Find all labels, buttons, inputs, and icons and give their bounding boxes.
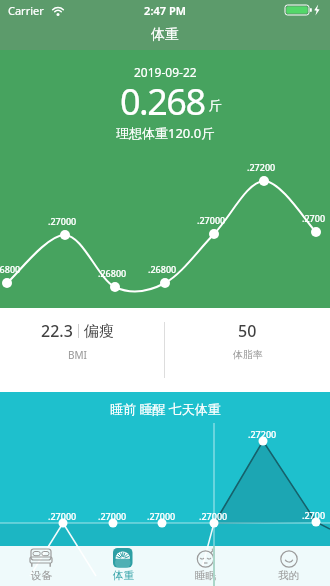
- staticText: BMI: [68, 348, 87, 362]
- staticText: 2:47 PM: [0, 3, 330, 18]
- staticText: .27000: [98, 510, 127, 522]
- staticText: .27000: [147, 510, 176, 522]
- staticText: 理想体重120.0斤: [116, 124, 215, 142]
- staticText: 体脂率: [233, 348, 263, 361]
- staticText: .27000: [48, 215, 77, 227]
- staticText: .27200: [248, 428, 277, 440]
- staticText: .2700: [302, 212, 326, 224]
- button[interactable]: 设备: [0, 546, 82, 586]
- button[interactable]: 50: [165, 308, 330, 392]
- staticText: .26800: [98, 267, 127, 279]
- staticText: .27200: [247, 161, 276, 173]
- staticText: 睡眠: [195, 569, 216, 582]
- staticText: .27000: [199, 510, 228, 522]
- button[interactable]: 体重: [82, 546, 164, 586]
- staticText: .2700: [302, 509, 326, 521]
- staticText: 偏瘦: [84, 322, 114, 341]
- staticText: 体重: [113, 569, 134, 582]
- staticText: .26800: [0, 263, 21, 275]
- staticText: 22.3: [41, 320, 73, 342]
- staticText: 2019-09-22: [134, 64, 197, 80]
- staticText: .27000: [197, 214, 226, 226]
- staticText: 睡前 睡醒 七天体重: [110, 400, 221, 418]
- staticText: 50: [238, 320, 257, 342]
- staticText: .27000: [48, 510, 77, 522]
- staticText: 斤: [205, 96, 222, 114]
- staticText: 体重: [151, 26, 179, 44]
- button[interactable]: 我的: [247, 546, 330, 586]
- staticText: 0.268: [120, 77, 205, 126]
- staticText: 设备: [31, 569, 52, 582]
- button[interactable]: 睡眠: [164, 546, 247, 586]
- staticText: 我的: [278, 569, 299, 582]
- button[interactable]: 22.3: [0, 308, 159, 392]
- staticText: Carrier: [8, 3, 44, 18]
- staticText: .26800: [148, 263, 177, 275]
